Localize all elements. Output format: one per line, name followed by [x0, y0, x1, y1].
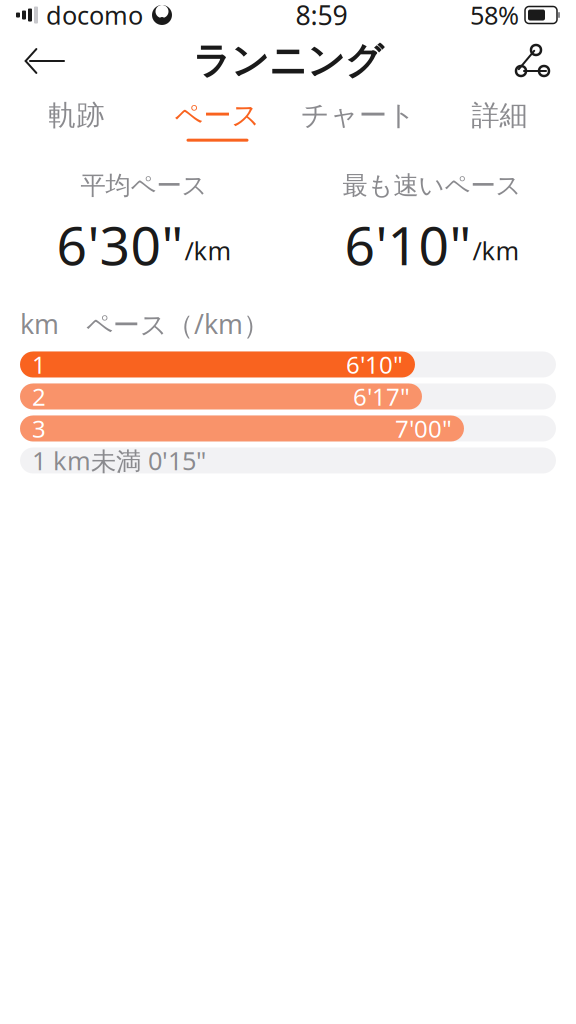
staticText: 8:59 — [295, 0, 347, 33]
staticText: docomo — [46, 0, 143, 32]
button[interactable]: ペース — [147, 92, 288, 148]
staticText: ペース — [174, 98, 260, 133]
staticText: チャート — [301, 98, 416, 133]
staticText: 6'10" — [344, 209, 471, 280]
staticText: /km — [472, 234, 519, 267]
staticText: /km — [184, 234, 231, 267]
staticText: 軌跡 — [48, 98, 104, 133]
staticText: 2 — [32, 381, 46, 412]
button[interactable]: チャート — [288, 92, 429, 148]
staticText: km ペース（/km） — [20, 306, 270, 341]
staticText: 6'17" — [353, 381, 410, 412]
staticText: 1 km未満 0'15" — [32, 444, 206, 477]
staticText: 平均ペース — [80, 170, 207, 201]
staticText: 詳細 — [471, 98, 527, 133]
button[interactable]: 軌跡 — [6, 92, 147, 148]
staticText: 最も速いペース — [342, 170, 521, 201]
staticText: 1 — [32, 349, 46, 380]
staticText: 58% — [470, 0, 519, 32]
staticText: 6'30" — [56, 209, 183, 280]
button[interactable]: 共有 — [500, 33, 564, 89]
button[interactable]: 戻る — [12, 33, 76, 89]
staticText: 7'00" — [395, 413, 452, 444]
button[interactable]: 詳細 — [429, 92, 570, 148]
staticText: ランニング — [193, 38, 383, 84]
staticText: 3 — [32, 413, 46, 444]
staticText: 6'10" — [346, 349, 403, 380]
